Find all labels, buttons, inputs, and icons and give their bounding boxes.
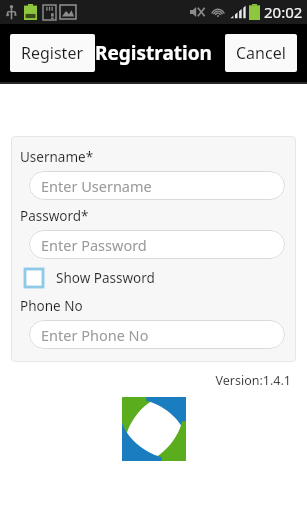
- button[interactable]: Register: [10, 34, 95, 72]
- button[interactable]: Show Password: [20, 267, 161, 289]
- staticText: Enter Username: [41, 176, 152, 196]
- staticText: Password*: [20, 207, 89, 225]
- staticText: Phone No: [20, 297, 83, 315]
- staticText: 20:02: [264, 2, 303, 22]
- button[interactable]: Cancel: [225, 34, 297, 72]
- staticText: Cancel: [236, 42, 286, 64]
- staticText: Username*: [20, 148, 94, 166]
- staticText: Register: [21, 42, 84, 64]
- staticText: Enter Phone No: [41, 325, 149, 345]
- other: App logo: [122, 397, 186, 461]
- staticText: Show Password: [56, 269, 155, 287]
- button[interactable]: Enter Phone No: [29, 320, 285, 349]
- staticText: Enter Password: [41, 235, 147, 255]
- staticText: Registration: [95, 40, 212, 66]
- button[interactable]: Enter Password: [29, 230, 285, 259]
- button[interactable]: Enter Username: [29, 171, 285, 200]
- staticText: Version:1.4.1: [0, 372, 291, 389]
